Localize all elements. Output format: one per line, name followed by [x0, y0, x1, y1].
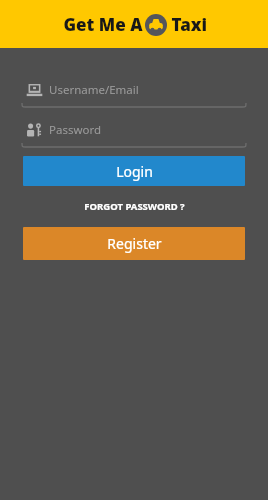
button[interactable]: Login: [23, 156, 245, 186]
staticText: FORGOT PASSWORD ?: [84, 200, 185, 213]
staticText: Register: [107, 234, 162, 253]
button[interactable]: Password: [22, 119, 246, 148]
staticText: Get Me A: [61, 13, 145, 36]
staticText: Username/Email: [49, 82, 139, 98]
other: Password: [22, 122, 46, 139]
staticText: Login: [116, 162, 153, 181]
staticText: Password: [49, 122, 102, 138]
staticText: Taxi: [167, 13, 207, 36]
other: Username: [22, 82, 46, 99]
button[interactable]: Register: [23, 227, 245, 260]
button[interactable]: Username: [22, 79, 246, 108]
button[interactable]: FORGOT PASSWORD ?: [0, 197, 268, 215]
